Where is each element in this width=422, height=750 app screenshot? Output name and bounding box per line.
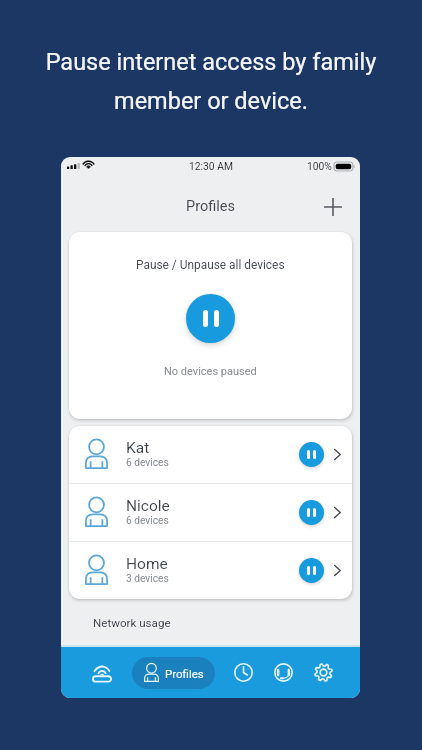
button[interactable]: Support [266,655,301,690]
staticText: Nicole [126,497,170,515]
staticText: Pause / Unpause all devices [136,258,285,272]
button[interactable]: History [226,655,261,690]
staticText: Profiles [165,667,204,680]
button[interactable]: Profiles [132,657,215,689]
button[interactable]: Pause Home [299,558,324,583]
button[interactable]: Nicole [69,484,352,541]
button[interactable]: Add profile [319,193,347,221]
staticText: 100% [307,160,332,172]
button[interactable]: Settings [306,655,341,690]
staticText: 6 devices [126,515,169,527]
staticText: No devices paused [164,365,257,378]
staticText: 3 devices [126,573,169,585]
button[interactable]: Pause Nicole [299,500,324,525]
button[interactable]: Pause or unpause all devices [186,294,235,343]
button[interactable]: Kat [69,426,352,483]
staticText: Network usage [93,616,171,630]
button[interactable]: Pause Kat [299,442,324,467]
button[interactable]: Network [84,655,119,690]
staticText: Kat [126,439,150,457]
staticText: Pause internet access by family member o… [18,48,404,115]
staticText: Home [126,555,168,573]
staticText: 6 devices [126,457,169,469]
button[interactable]: Home [69,542,352,599]
staticText: 12:30 AM [189,160,233,172]
staticText: Profiles [186,198,235,215]
